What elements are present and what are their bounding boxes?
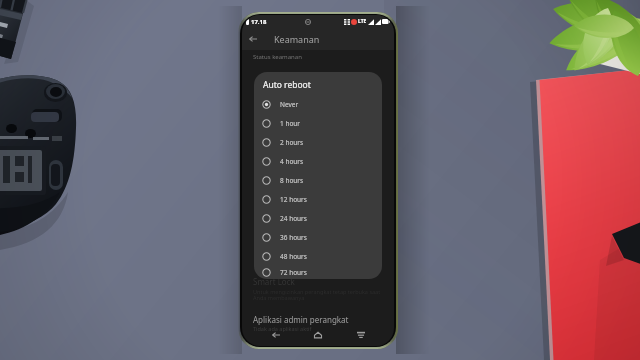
staticText: Keamanan — [274, 33, 320, 45]
staticText: 36 hours — [280, 233, 307, 242]
button[interactable]: 72 hours — [254, 266, 382, 279]
staticText: Aplikasi admin perangkat — [253, 314, 349, 325]
button[interactable]: 36 hours — [254, 228, 382, 247]
staticText: 12 hours — [280, 195, 307, 204]
staticText: Never — [280, 100, 299, 109]
button[interactable]: 12 hours — [254, 190, 382, 209]
button[interactable]: Navigate up — [242, 28, 264, 50]
staticText: 4 hours — [280, 157, 304, 166]
staticText: 72 hours — [280, 268, 307, 277]
staticText: Status keamanan — [253, 53, 302, 61]
staticText: 8 hours — [280, 176, 304, 185]
staticText: 17.18 — [251, 18, 267, 26]
button[interactable]: Home — [309, 326, 327, 344]
button[interactable]: 48 hours — [254, 247, 382, 266]
staticText: 24 hours — [280, 214, 307, 223]
staticText: 1 hour — [280, 119, 301, 128]
staticText: 2 hours — [280, 138, 304, 147]
staticText: 48 hours — [280, 252, 307, 261]
button[interactable]: 2 hours — [254, 133, 382, 152]
button[interactable]: Back — [267, 326, 285, 344]
button[interactable]: Never — [254, 95, 382, 114]
button[interactable]: 4 hours — [254, 152, 382, 171]
button[interactable]: 1 hour — [254, 114, 382, 133]
button[interactable]: 24 hours — [254, 209, 382, 228]
staticText: Auto reboot — [263, 79, 311, 91]
staticText: LTE — [358, 18, 367, 25]
button[interactable]: 8 hours — [254, 171, 382, 190]
staticText: Tidak ada aplikasi aktif — [253, 325, 312, 332]
staticText: Smart Lock — [253, 276, 295, 287]
button[interactable]: Recent apps — [352, 326, 370, 344]
